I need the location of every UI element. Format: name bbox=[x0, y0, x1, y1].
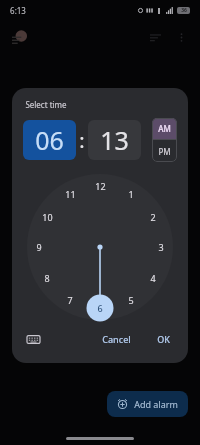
button[interactable]: PM bbox=[152, 140, 177, 162]
staticText: 7 bbox=[67, 294, 73, 306]
staticText: 36 bbox=[181, 7, 187, 14]
button[interactable]: More options bbox=[172, 28, 190, 46]
staticText: Cancel bbox=[102, 333, 131, 345]
staticText: PM bbox=[158, 146, 171, 157]
staticText: 9 bbox=[36, 241, 42, 253]
button[interactable]: 06 bbox=[23, 120, 76, 160]
button[interactable]: Switch to text input bbox=[23, 329, 43, 349]
staticText: 6 bbox=[97, 302, 103, 314]
button[interactable]: 13 bbox=[88, 120, 141, 160]
staticText: 5 bbox=[128, 294, 134, 306]
staticText: 1 bbox=[128, 188, 134, 200]
button[interactable]: AM bbox=[152, 118, 177, 139]
button[interactable]: Cancel bbox=[95, 329, 138, 349]
button[interactable]: Account bbox=[10, 28, 28, 46]
staticText: 12 bbox=[95, 180, 106, 192]
staticText: 11 bbox=[65, 188, 76, 200]
staticText: 10 bbox=[42, 211, 53, 223]
staticText: 6:13 bbox=[10, 5, 26, 16]
staticText: AM bbox=[158, 123, 171, 134]
button[interactable]: Sort bbox=[146, 28, 164, 46]
staticText: OK bbox=[157, 333, 170, 345]
staticText: 8 bbox=[44, 272, 50, 284]
staticText: 06 bbox=[35, 123, 64, 157]
button[interactable]: OK bbox=[150, 329, 177, 349]
button[interactable]: Add alarm bbox=[107, 391, 188, 417]
staticText: Select time bbox=[25, 99, 67, 110]
staticText: 4 bbox=[150, 272, 156, 284]
staticText: Add alarm bbox=[134, 398, 178, 410]
staticText: : bbox=[79, 127, 85, 154]
staticText: 3 bbox=[158, 241, 164, 253]
staticText: 2 bbox=[150, 211, 156, 223]
staticText: 13 bbox=[100, 123, 129, 157]
